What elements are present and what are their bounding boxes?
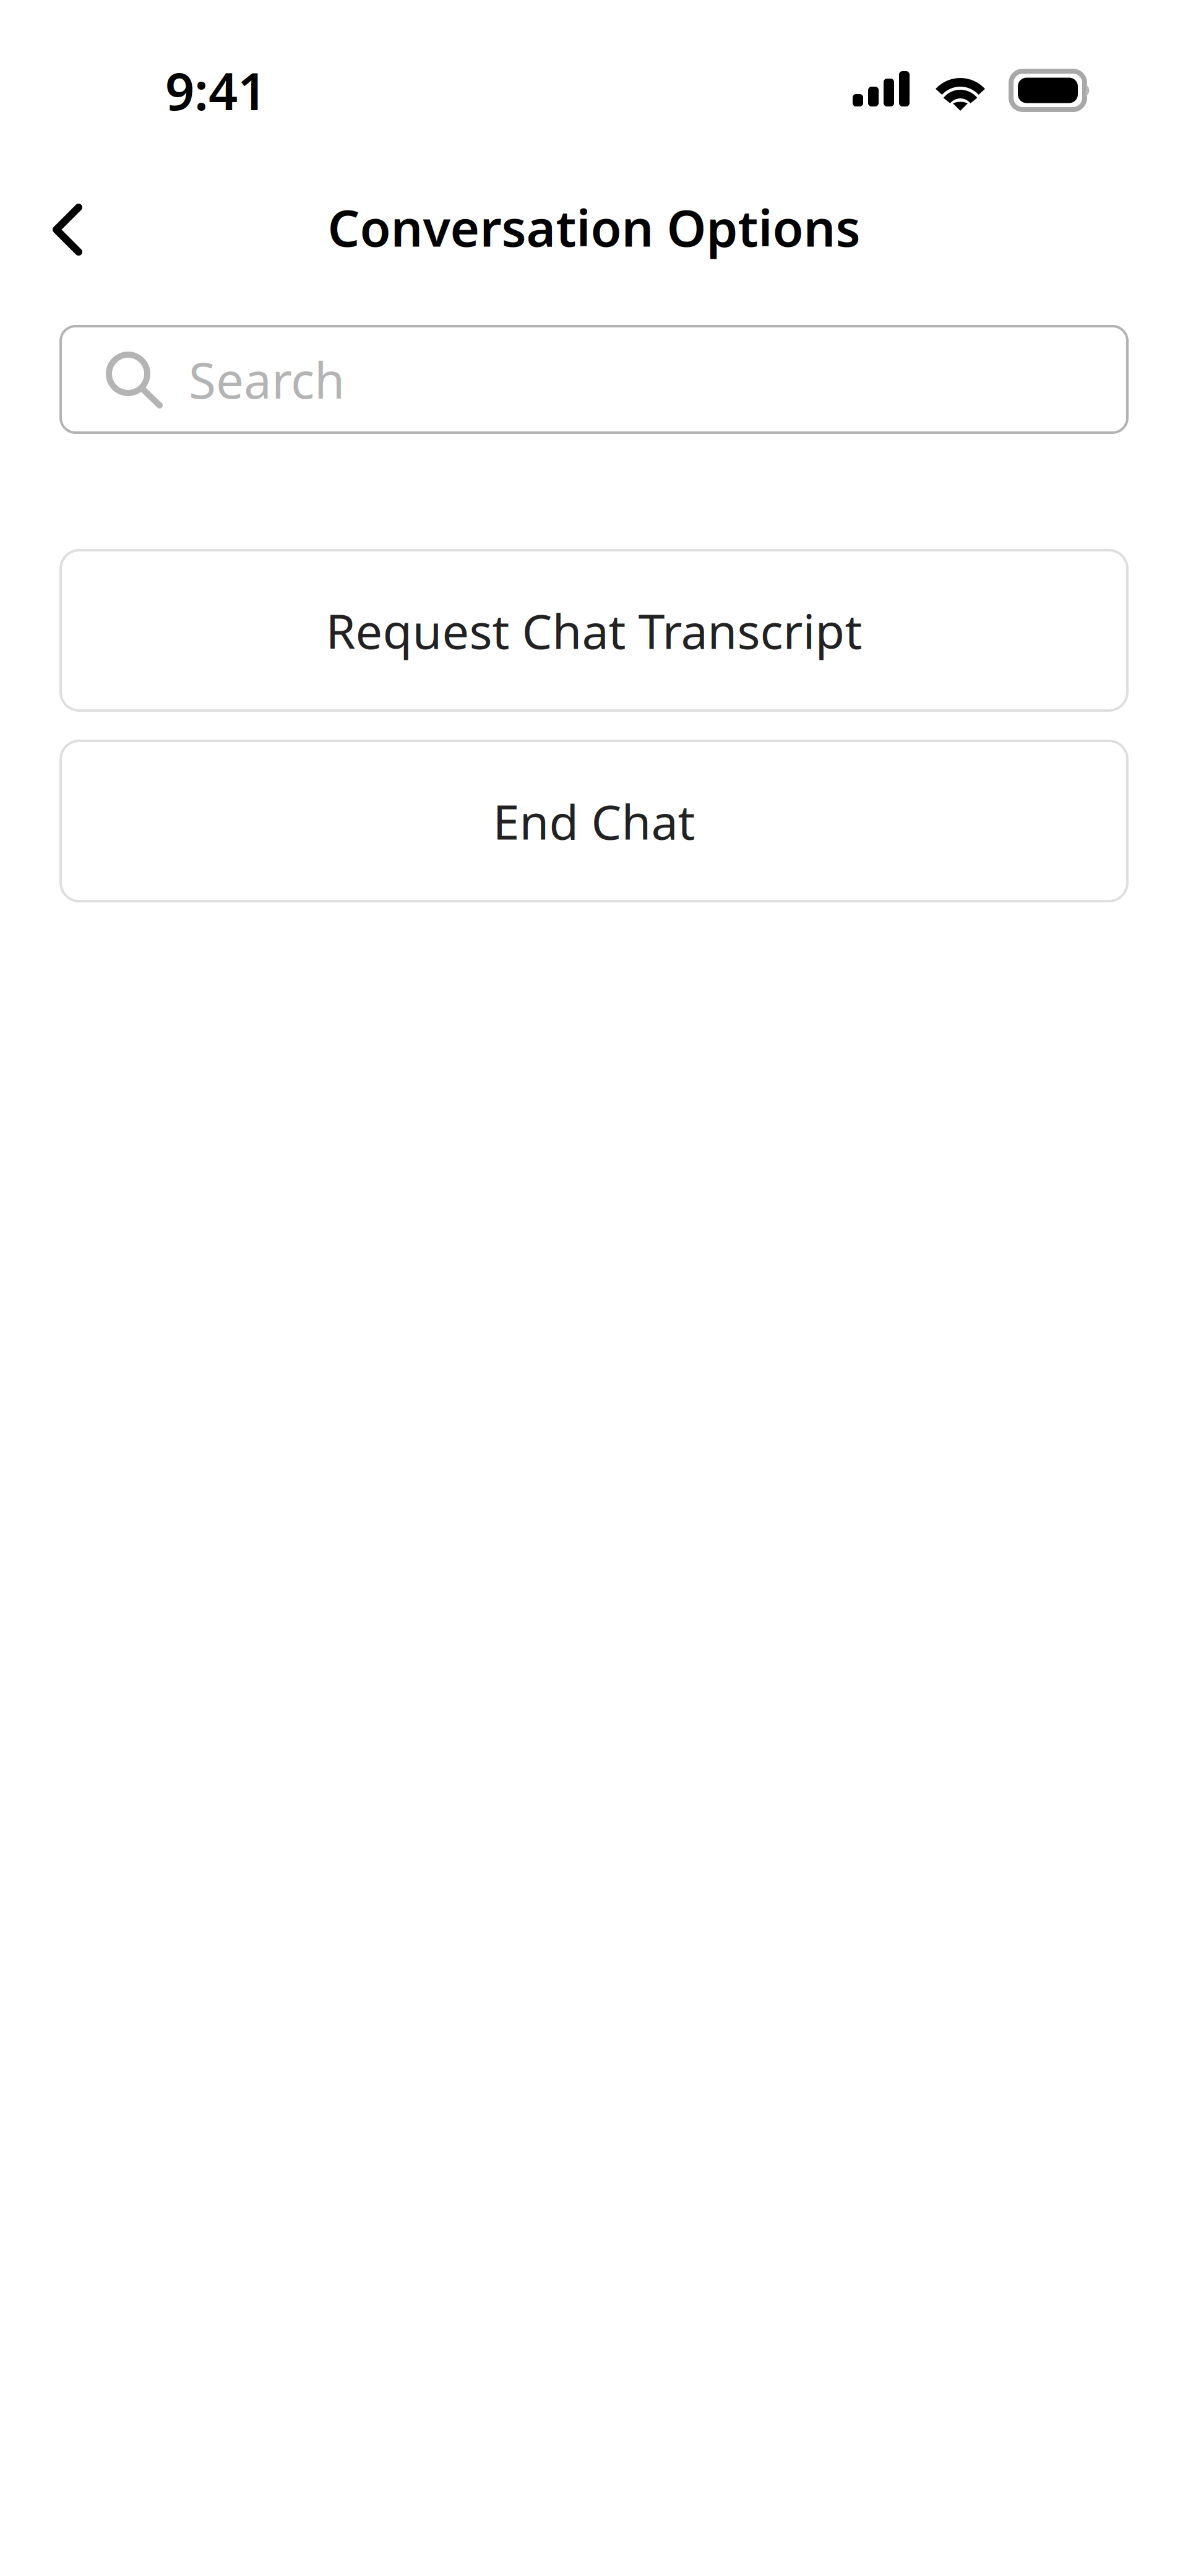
staticText: End Chat <box>493 789 695 853</box>
button[interactable]: End Chat <box>61 741 1127 901</box>
button[interactable]: Search <box>61 326 1127 433</box>
staticText: Conversation Options <box>328 194 860 261</box>
staticText: 9:41 <box>165 56 267 124</box>
button[interactable]: Request Chat Transcript <box>61 550 1127 711</box>
staticText: Request Chat Transcript <box>326 599 862 662</box>
button[interactable]: Back <box>28 188 107 267</box>
staticText: Search <box>189 347 345 412</box>
